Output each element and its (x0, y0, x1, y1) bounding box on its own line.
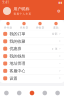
staticText: 待收货 (35, 26, 44, 29)
button[interactable]: 待发货 (16, 22, 32, 29)
staticText: > (59, 62, 61, 65)
staticText: 3 张 (52, 47, 58, 50)
button[interactable]: Home (0, 86, 13, 100)
button[interactable]: 设置 (0, 75, 64, 82)
button[interactable]: 待付款 (0, 22, 16, 29)
button[interactable]: Cart (38, 86, 51, 100)
button[interactable]: Settings (57, 9, 61, 13)
staticText: ⚙ (57, 9, 61, 13)
button[interactable]: 待收货 (32, 22, 48, 29)
staticText: 用户昵称 (13, 6, 29, 11)
staticText: 我的订单 (9, 31, 25, 36)
staticText: > (59, 54, 61, 58)
button[interactable]: 地址管理 (0, 60, 64, 67)
staticText: 待付款 (3, 26, 12, 29)
staticText: ▮ ▮ (58, 1, 61, 4)
staticText: > (59, 39, 61, 43)
staticText: 优惠券 (9, 46, 21, 51)
staticText: 查看个人主页 (13, 12, 31, 15)
staticText: 我的收藏 (9, 39, 25, 44)
staticText: 客服中心 (9, 68, 25, 73)
staticText: > (59, 47, 61, 50)
staticText: 退款 (53, 26, 59, 29)
staticText: 我的钱包 (9, 54, 25, 58)
button[interactable]: Discover (26, 86, 38, 100)
button[interactable]: 我的钱包 (0, 53, 64, 60)
button[interactable]: Profile (51, 86, 64, 100)
button[interactable]: 我的收藏 (0, 38, 64, 45)
button[interactable]: 客服中心 (0, 67, 64, 74)
button[interactable]: 退款 (48, 22, 64, 29)
staticText: 待发货 (19, 26, 28, 29)
staticText: > (59, 32, 61, 36)
button[interactable]: 优惠券 (0, 45, 64, 52)
staticText: 地址管理 (9, 61, 25, 66)
staticText: 设置 (9, 76, 17, 81)
staticText: 9:41 (2, 1, 9, 4)
staticText: > (59, 76, 61, 80)
button[interactable]: 我的订单 (0, 30, 64, 37)
button[interactable]: Categories (13, 86, 26, 100)
staticText: 全部 (52, 32, 58, 36)
staticText: > (59, 69, 61, 73)
